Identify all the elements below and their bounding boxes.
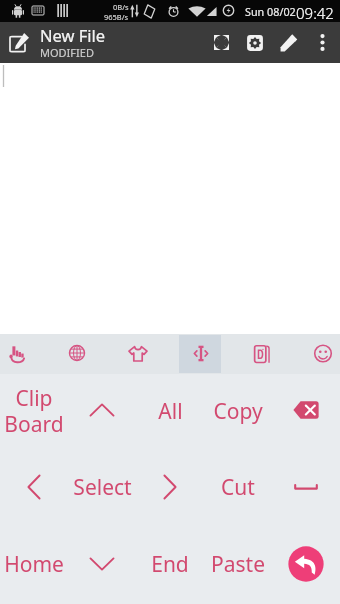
button[interactable]: Copy bbox=[204, 374, 272, 450]
button[interactable]: Settings bbox=[237, 22, 273, 63]
staticText: Sun 08/02 bbox=[245, 4, 296, 19]
button[interactable]: Fullscreen bbox=[205, 22, 238, 63]
button[interactable]: Home bbox=[0, 527, 68, 604]
staticText: Clip Board bbox=[4, 384, 64, 438]
button[interactable]: Touch pointer bbox=[0, 334, 39, 374]
button[interactable]: Dictionary bbox=[240, 334, 284, 374]
button[interactable]: Undo bbox=[272, 527, 340, 604]
staticText: All bbox=[158, 397, 183, 426]
staticText: 0B/s bbox=[113, 2, 129, 12]
button[interactable]: Themes bbox=[114, 334, 162, 374]
button[interactable]: Change language bbox=[55, 334, 99, 374]
staticText: Copy bbox=[213, 397, 263, 426]
staticText: 09:42 bbox=[296, 3, 334, 23]
button[interactable]: Text editing tools bbox=[178, 334, 224, 374]
button[interactable]: Backspace bbox=[272, 374, 340, 450]
button[interactable]: Move right bbox=[136, 450, 204, 527]
button[interactable]: Move left bbox=[0, 450, 68, 527]
staticText: Paste bbox=[211, 550, 265, 579]
staticText: End bbox=[151, 550, 189, 579]
button[interactable]: End bbox=[136, 527, 204, 604]
button[interactable]: Move up bbox=[68, 374, 136, 450]
button[interactable]: Clip Board bbox=[0, 374, 68, 450]
button[interactable]: Emoji bbox=[300, 334, 340, 374]
button[interactable]: More options bbox=[311, 22, 334, 63]
staticText: Select bbox=[73, 473, 132, 502]
button[interactable]: Rename file bbox=[0, 22, 38, 63]
staticText: Home bbox=[4, 550, 64, 579]
staticText: New File bbox=[40, 24, 106, 46]
button[interactable]: Cut bbox=[204, 450, 272, 527]
button[interactable]: Select bbox=[68, 450, 136, 527]
staticText: Cut bbox=[221, 473, 255, 502]
staticText: 965B/s bbox=[104, 12, 129, 22]
staticText: MODIFIED bbox=[40, 45, 94, 60]
button[interactable]: Edit bbox=[271, 22, 307, 63]
button[interactable]: Paste bbox=[204, 527, 272, 604]
button[interactable]: Move down bbox=[68, 527, 136, 604]
button[interactable]: Space bbox=[272, 450, 340, 527]
button[interactable]: All bbox=[136, 374, 204, 450]
